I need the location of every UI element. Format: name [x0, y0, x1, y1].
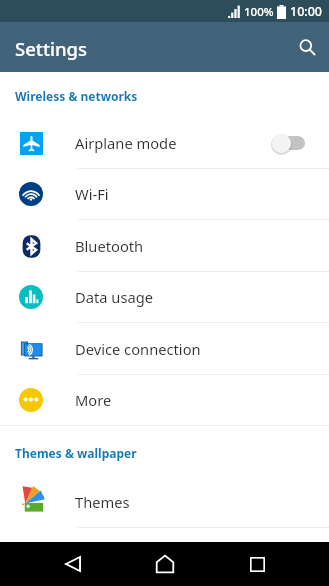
staticText: 10:00 [290, 3, 323, 20]
button[interactable]: Airplane mode [0, 117, 329, 169]
staticText: More [75, 390, 112, 410]
button[interactable]: Search [287, 27, 327, 67]
staticText: Settings [15, 36, 88, 61]
staticText: Device connection [75, 339, 201, 359]
button[interactable]: Home [119, 542, 211, 586]
button[interactable]: More [0, 375, 329, 426]
button[interactable]: Device connection [0, 323, 329, 375]
button[interactable]: Themes [0, 477, 329, 528]
staticText: Bluetooth [75, 236, 144, 256]
staticText: Data usage [75, 287, 153, 307]
staticText: Themes & wallpaper [15, 445, 137, 461]
staticText: Wireless & networks [15, 88, 138, 104]
staticText: Airplane mode [75, 133, 177, 153]
staticText: Wi-Fi [75, 184, 109, 204]
button[interactable]: Recent apps [211, 542, 303, 586]
button[interactable]: Data usage [0, 272, 329, 323]
button[interactable]: Wi-Fi [0, 169, 329, 220]
button[interactable]: Bluetooth [0, 220, 329, 272]
staticText: Themes [75, 492, 130, 512]
button[interactable]: Back [27, 542, 119, 586]
staticText: 100% [244, 4, 274, 20]
